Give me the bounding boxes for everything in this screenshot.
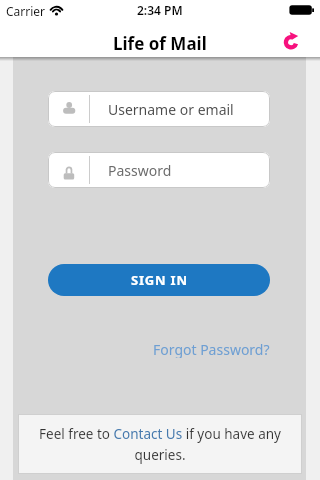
staticText: Username or email (108, 100, 234, 119)
staticText: Life of Mail (113, 32, 207, 55)
staticText: Password (108, 161, 172, 180)
button[interactable]: Username or email (48, 91, 270, 127)
button[interactable]: Password (48, 152, 270, 188)
button[interactable]: Feel free to Contact Us if you have any … (18, 414, 302, 474)
staticText: 2:34 PM (137, 2, 183, 18)
button[interactable] (279, 30, 305, 56)
button[interactable]: SIGN IN (48, 264, 270, 296)
staticText: SIGN IN (131, 271, 188, 289)
staticText: Carrier (6, 3, 46, 19)
staticText: Feel free to Contact Us if you have any … (39, 425, 281, 464)
button[interactable]: Forgot Password? (153, 340, 270, 358)
